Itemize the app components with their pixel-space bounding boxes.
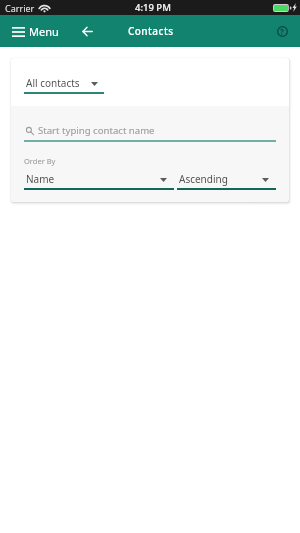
button[interactable]: Name (24, 172, 174, 190)
button[interactable]: Start typing contact name (24, 124, 276, 137)
staticText: Carrier (5, 2, 35, 14)
staticText: Start typing contact name (38, 124, 155, 137)
button[interactable]: All contacts (24, 76, 104, 94)
staticText: 4:19 PM (135, 1, 171, 14)
button[interactable]: Menu (0, 16, 65, 47)
staticText: ? (280, 26, 284, 37)
staticText: Contacts (128, 24, 174, 38)
staticText: All contacts (26, 76, 80, 90)
staticText: Name (26, 172, 55, 186)
staticText: Menu (29, 24, 59, 39)
button[interactable]: Help (269, 18, 295, 44)
staticText: Order By (24, 156, 56, 166)
button[interactable]: Ascending (177, 172, 276, 190)
button[interactable]: Back (75, 19, 99, 43)
staticText: Ascending (179, 172, 228, 186)
